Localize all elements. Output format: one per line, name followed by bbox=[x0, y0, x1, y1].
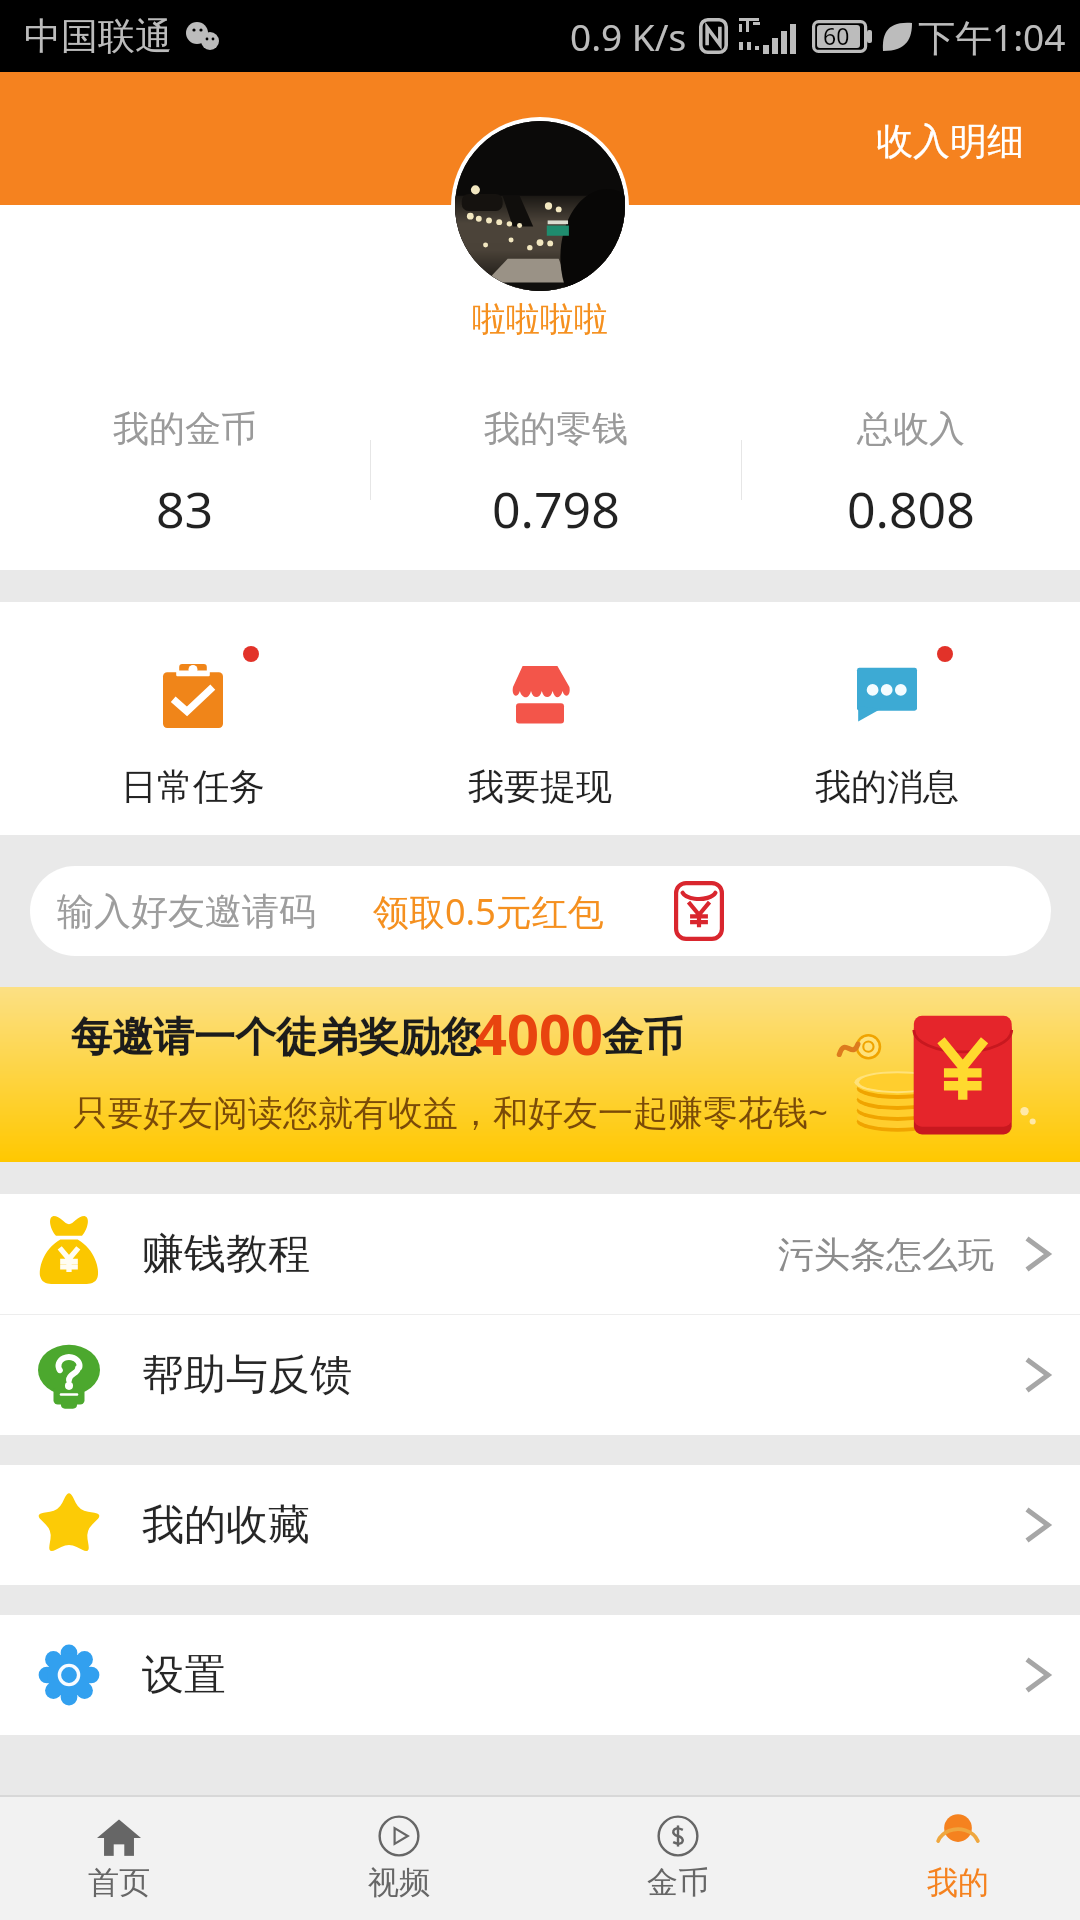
button[interactable]: 我要提现 bbox=[366, 602, 713, 835]
staticText: 我的 bbox=[927, 1863, 989, 1902]
staticText: 金币 bbox=[602, 1012, 684, 1064]
staticText: 视频 bbox=[368, 1863, 430, 1902]
staticText: 0.798 bbox=[492, 475, 620, 543]
button[interactable]: 设置 bbox=[0, 1615, 1080, 1735]
button[interactable]: 我的收藏 bbox=[0, 1465, 1080, 1585]
staticText: 我的收藏 bbox=[142, 1499, 310, 1552]
staticText: 83 bbox=[156, 475, 214, 543]
button[interactable]: 我的 bbox=[878, 1797, 1038, 1920]
staticText: 赚钱教程 bbox=[142, 1228, 310, 1281]
staticText: 啦啦啦啦 bbox=[472, 298, 608, 341]
staticText: 每邀请一个徒弟奖励您 bbox=[71, 1012, 481, 1064]
staticText: 4000 bbox=[475, 995, 604, 1071]
button[interactable]: 帮助与反馈 bbox=[0, 1315, 1080, 1435]
staticText: 0.808 bbox=[847, 475, 975, 543]
staticText: 领取0.5元红包 bbox=[373, 887, 604, 936]
staticText: 我的零钱 bbox=[484, 406, 628, 451]
staticText: 输入好友邀请码 bbox=[57, 888, 316, 935]
button[interactable]: 赚钱教程 bbox=[0, 1194, 1080, 1314]
button[interactable] bbox=[455, 121, 625, 291]
staticText: 0.9 K/s bbox=[570, 11, 687, 61]
button[interactable]: 每邀请一个徒弟奖励您 bbox=[0, 987, 1080, 1162]
staticText: 首页 bbox=[88, 1863, 150, 1902]
staticText: 污头条怎么玩 bbox=[778, 1232, 994, 1277]
staticText: 下午1:04 bbox=[918, 11, 1066, 62]
button[interactable]: 我的金币 bbox=[0, 392, 370, 570]
staticText: 帮助与反馈 bbox=[142, 1349, 352, 1402]
button[interactable]: 输入好友邀请码 bbox=[30, 866, 1051, 956]
staticText: 我的金币 bbox=[113, 406, 257, 451]
staticText: 我要提现 bbox=[468, 764, 612, 809]
staticText: 金币 bbox=[647, 1863, 709, 1902]
button[interactable]: 日常任务 bbox=[20, 602, 366, 835]
button[interactable]: 总收入 bbox=[742, 392, 1080, 570]
button[interactable]: 收入明细 bbox=[846, 106, 1080, 177]
staticText: 中国联通 bbox=[24, 13, 172, 60]
staticText: 日常任务 bbox=[121, 764, 265, 809]
staticText: 收入明细 bbox=[876, 118, 1024, 165]
button[interactable]: 视频 bbox=[319, 1797, 479, 1920]
staticText: 总收入 bbox=[857, 406, 965, 451]
staticText: 我的消息 bbox=[815, 764, 959, 809]
button[interactable]: 我的零钱 bbox=[371, 392, 741, 570]
staticText: 只要好友阅读您就有收益，和好友一起赚零花钱~ bbox=[73, 1088, 829, 1136]
staticText: 60 bbox=[823, 20, 850, 51]
staticText: 设置 bbox=[142, 1649, 226, 1702]
button[interactable]: 首页 bbox=[39, 1797, 199, 1920]
button[interactable]: 金币 bbox=[598, 1797, 758, 1920]
button[interactable]: 我的消息 bbox=[713, 602, 1060, 835]
